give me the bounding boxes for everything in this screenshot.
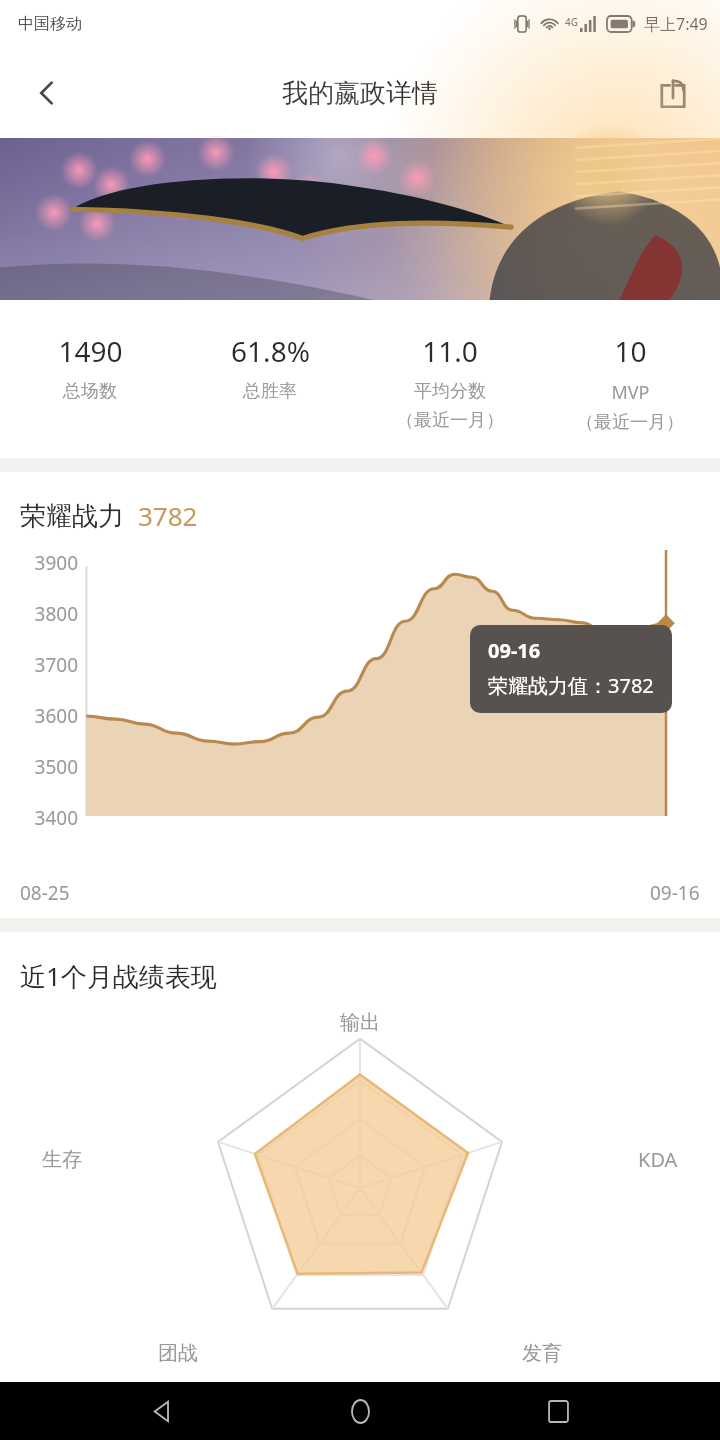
staticText: 总胜率 bbox=[243, 380, 297, 403]
staticText: 平均分数 bbox=[414, 380, 486, 403]
staticText: 生存 bbox=[42, 1147, 82, 1172]
staticText: 3600 bbox=[14, 703, 78, 729]
staticText: 09-16 bbox=[488, 637, 541, 664]
staticText: 3782 bbox=[138, 498, 198, 533]
staticText: 61.8% bbox=[231, 332, 310, 370]
staticText: 3400 bbox=[14, 805, 78, 831]
staticText: MVP bbox=[611, 380, 650, 405]
staticText: 我的嬴政详情 bbox=[282, 77, 438, 110]
staticText: 近1个月战绩表现 bbox=[20, 958, 217, 994]
staticText: 08-25 bbox=[20, 880, 70, 906]
staticText: 早上7:49 bbox=[644, 13, 708, 35]
staticText: 发育 bbox=[522, 1341, 562, 1366]
staticText: 09-16 bbox=[650, 880, 700, 906]
button[interactable]: Share bbox=[646, 66, 700, 120]
button[interactable]: Home bbox=[324, 1382, 396, 1440]
staticText: 输出 bbox=[340, 1010, 380, 1035]
staticText: （最近一月） bbox=[396, 409, 504, 432]
staticText: 3800 bbox=[14, 601, 78, 627]
staticText: 11.0 bbox=[422, 332, 478, 370]
staticText: 3900 bbox=[14, 550, 78, 576]
staticText: 10 bbox=[614, 332, 647, 370]
staticText: 团战 bbox=[158, 1341, 198, 1366]
button[interactable]: Back bbox=[20, 66, 74, 120]
staticText: 3700 bbox=[14, 652, 78, 678]
staticText: 3500 bbox=[14, 754, 78, 780]
button[interactable]: Back bbox=[126, 1382, 198, 1440]
staticText: 1490 bbox=[58, 332, 123, 370]
staticText: 总场数 bbox=[63, 380, 117, 403]
staticText: 4G bbox=[565, 15, 578, 29]
staticText: 荣耀战力值：3782 bbox=[488, 672, 654, 699]
button[interactable]: Recents bbox=[522, 1382, 594, 1440]
staticText: （最近一月） bbox=[576, 411, 684, 434]
staticText: KDA bbox=[638, 1146, 678, 1173]
staticText: 荣耀战力 bbox=[20, 500, 124, 533]
staticText: 中国移动 bbox=[18, 14, 82, 34]
